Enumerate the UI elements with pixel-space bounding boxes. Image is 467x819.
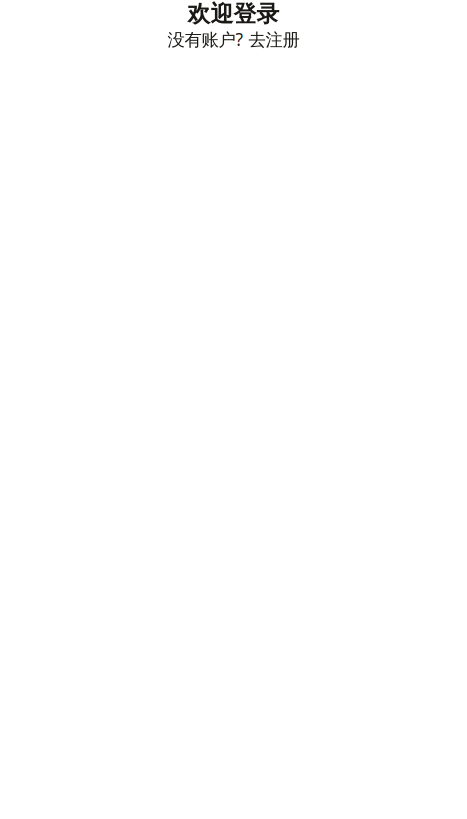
staticText: 没有账户? 去注册 xyxy=(167,28,299,51)
staticText: 欢迎登录 xyxy=(187,0,279,28)
